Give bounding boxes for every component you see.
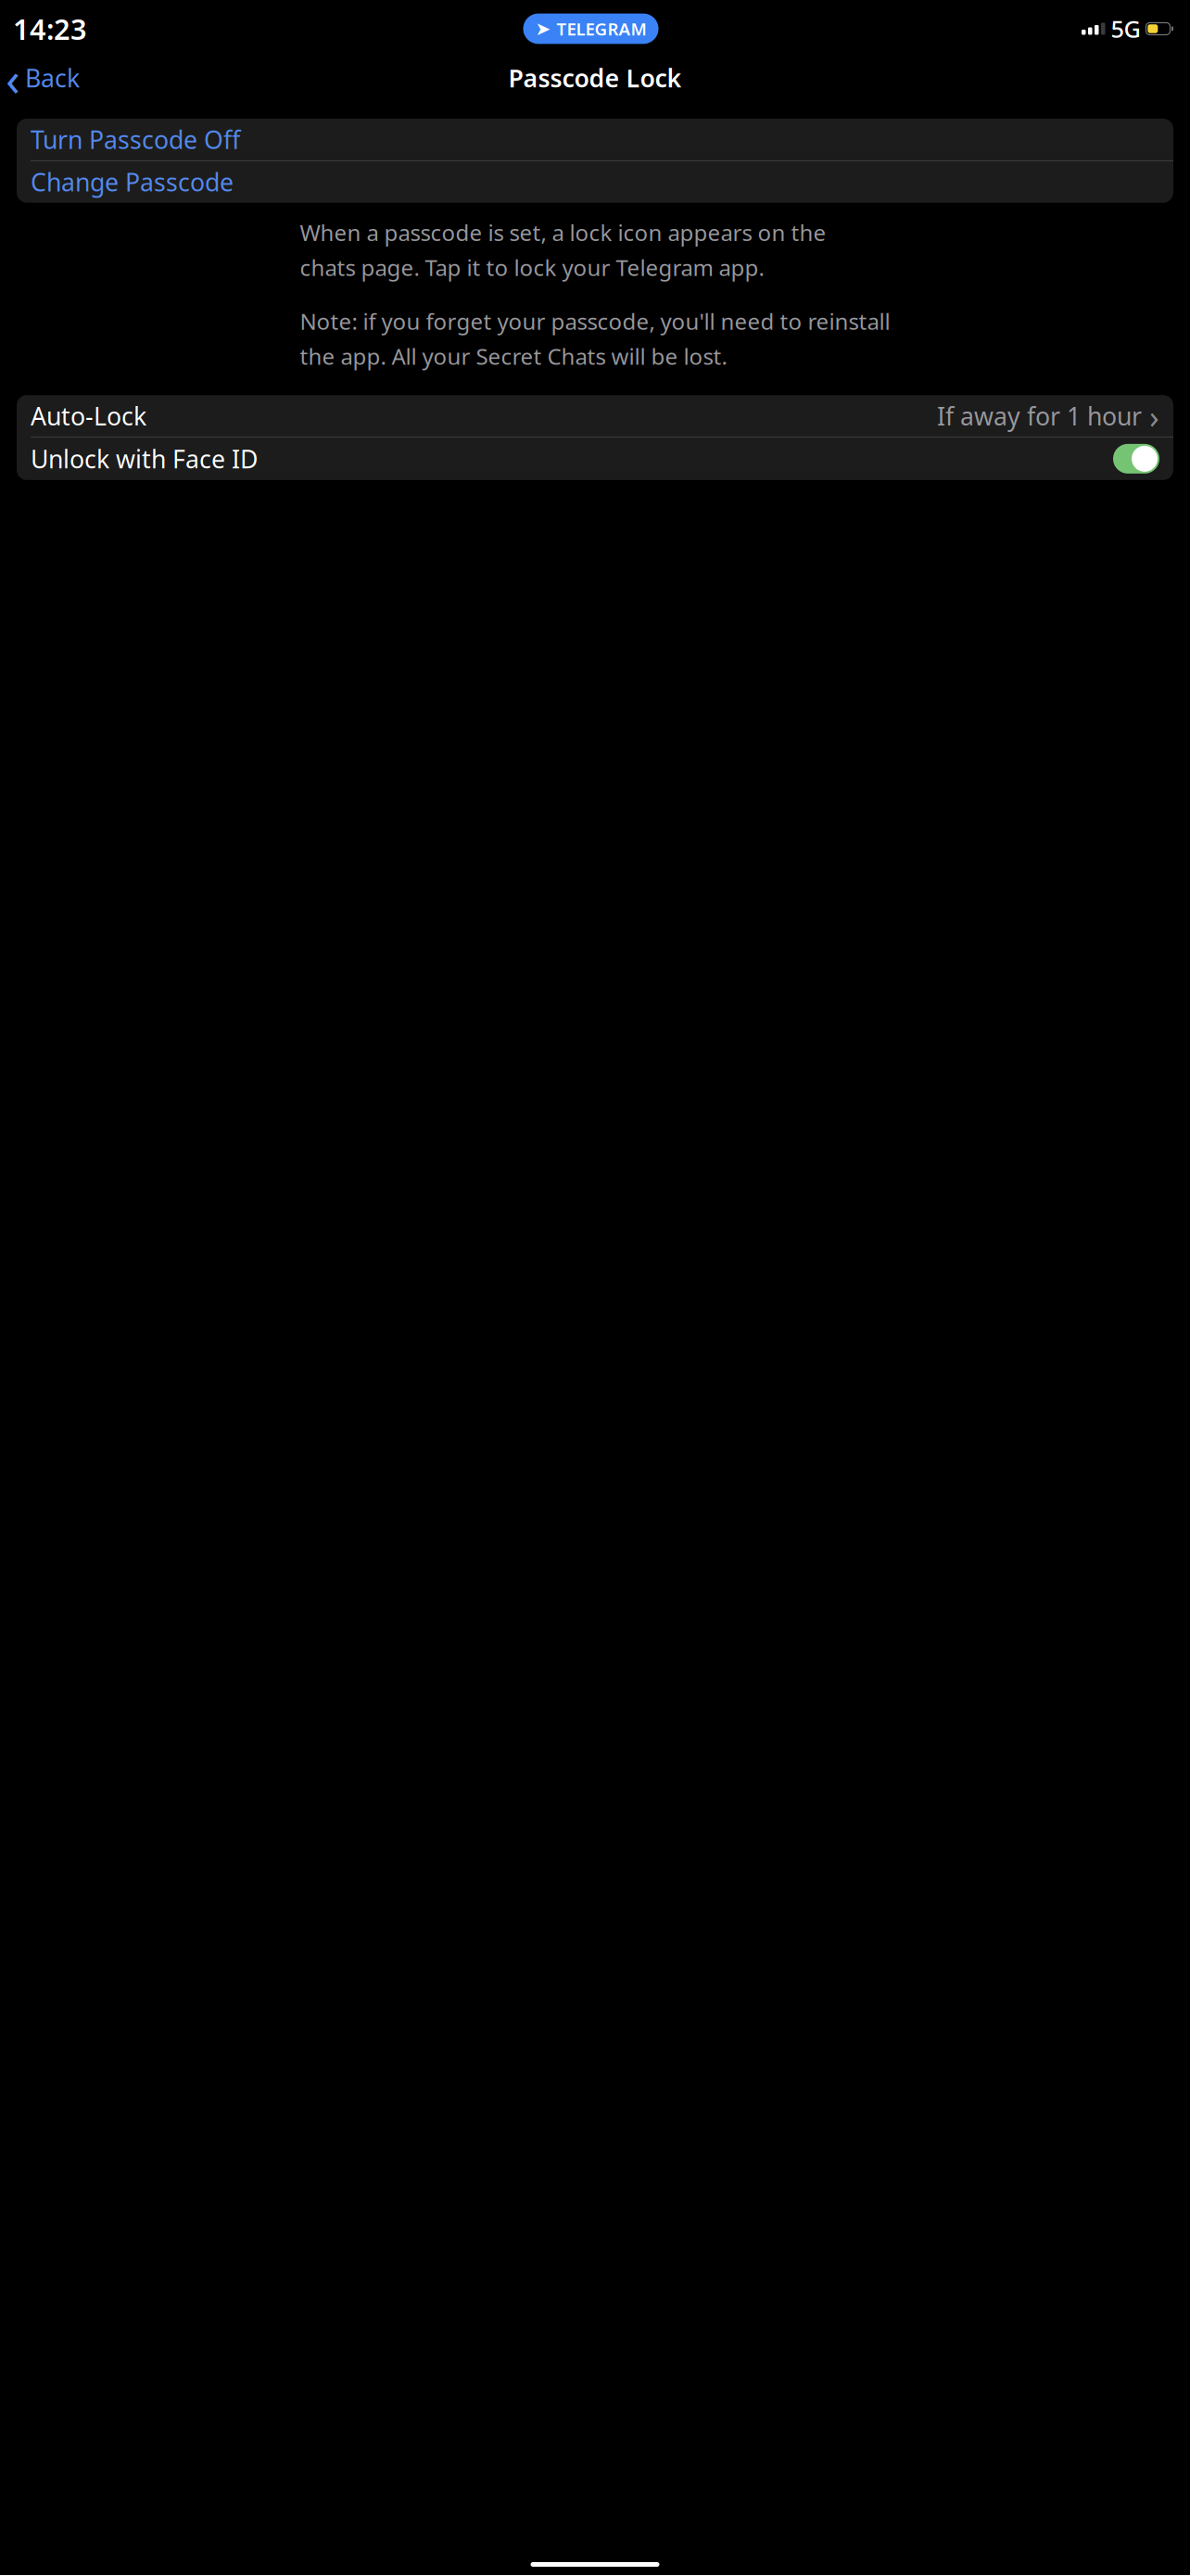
staticText: TELEGRAM [557, 17, 646, 40]
staticText: When a passcode is set, a lock icon appe… [300, 218, 826, 247]
staticText: ➤ [535, 18, 551, 39]
button[interactable]: Auto-Lock [17, 395, 1173, 437]
staticText: Passcode Lock [508, 61, 682, 94]
staticText: Back [25, 61, 80, 94]
staticText: If away for 1 hour [937, 400, 1142, 432]
button[interactable]: Unlock with Face ID [17, 437, 1173, 480]
staticText: chats page. Tap it to lock your Telegram… [300, 253, 764, 282]
staticText: Note: if you forget your passcode, you'l… [300, 306, 890, 336]
staticText: ‹ [6, 47, 20, 109]
button[interactable]: ‹ [0, 57, 89, 98]
staticText: › [1149, 395, 1159, 437]
staticText: Unlock with Face ID [31, 442, 258, 475]
button[interactable]: Change Passcode [17, 161, 1173, 203]
staticText: Change Passcode [31, 165, 234, 198]
staticText: 5G [1111, 13, 1140, 44]
staticText: the app. All your Secret Chats will be l… [300, 341, 727, 371]
button[interactable]: Turn Passcode Off [17, 119, 1173, 160]
staticText: 14:23 [13, 10, 87, 48]
staticText: Auto-Lock [31, 400, 146, 432]
staticText: Turn Passcode Off [31, 123, 240, 156]
